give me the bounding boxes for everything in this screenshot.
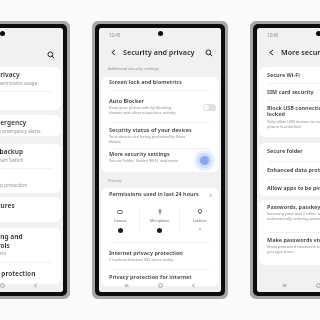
button[interactable]: Recent apps — [278, 279, 291, 292]
button[interactable]: Privacy protection for internet — [101, 270, 219, 286]
button[interactable]: More security settings — [101, 149, 219, 172]
button[interactable]: Microphone — [140, 209, 179, 233]
staticText: Permissions used in last 24 hours — [109, 190, 199, 197]
staticText: Screen lock and biometrics — [109, 78, 182, 85]
button[interactable]: Home — [154, 279, 167, 292]
button[interactable]: SIM card security — [259, 84, 320, 100]
staticText: Enhanced data protection — [267, 166, 320, 173]
button[interactable]: Navigate up — [266, 47, 276, 57]
staticText: Show password characters briefly as you … — [267, 244, 320, 254]
staticText: More security settings — [281, 47, 320, 57]
button[interactable]: Home — [312, 279, 320, 292]
button[interactable]: Security status of your devices — [101, 123, 219, 148]
staticText: Storage, Memory, App protection — [0, 182, 28, 188]
staticText: Microphone — [150, 218, 170, 223]
staticText: Screen time, app timers — [0, 250, 7, 256]
staticText: Privacy protection for internet — [109, 273, 192, 280]
button[interactable]: Internet privacy protection — [101, 243, 219, 269]
staticText: Samsung Cloud · Smart Switch — [0, 157, 24, 163]
staticText: Advanced features — [0, 201, 15, 210]
button[interactable]: Passwords, passkeys and autofill — [259, 200, 320, 232]
staticText: 12:45 — [267, 32, 279, 38]
staticText: Samsung pass and 2 other services for au… — [267, 211, 320, 221]
button[interactable]: Block USB connections when locked — [259, 101, 320, 137]
staticText: Passwords, passkeys and autofill — [267, 203, 320, 210]
staticText: 7 trackers blocked 392 times today — [109, 257, 174, 262]
button[interactable]: Auto Blocker — [101, 91, 219, 122]
button[interactable]: Search — [45, 49, 56, 60]
button[interactable]: Device care — [0, 169, 61, 193]
staticText: Biometrics, Blocker, permission usage — [0, 80, 38, 86]
button[interactable]: Battery · App protection — [0, 263, 61, 284]
staticText: Secure Wi-Fi — [267, 71, 300, 78]
button[interactable]: Accounts and backup — [0, 144, 61, 168]
staticText: SIM card security — [267, 88, 314, 95]
button[interactable]: Allow apps to be pinned — [259, 180, 320, 196]
staticText: Secure Folder, Secure Wi-Fi, and more — [109, 158, 179, 163]
staticText: Secure folder — [267, 147, 303, 154]
button[interactable]: Search — [203, 47, 214, 58]
button[interactable]: Permissions used in last 24 hours — [101, 188, 219, 203]
staticText: Make passwords visible — [267, 236, 320, 243]
staticText: Security and privacy — [123, 47, 203, 57]
staticText: Block USB connections when locked — [267, 104, 320, 118]
staticText: Allow apps to be pinned — [267, 184, 320, 191]
staticText: Keep your phone safe by blocking threats… — [109, 105, 176, 115]
staticText: Auto Blocker — [109, 97, 144, 104]
staticText: Privacy — [108, 178, 122, 183]
button[interactable]: Navigate up — [108, 47, 118, 57]
button[interactable]: Camera — [101, 209, 139, 233]
button[interactable]: Secure Wi-Fi — [259, 67, 320, 83]
staticText: 12:45 — [109, 32, 121, 38]
staticText: Digital wellbeing and parental controls — [0, 232, 23, 249]
button[interactable]: Screen lock and biometrics — [101, 77, 219, 90]
button[interactable]: Safety and emergency — [0, 115, 61, 136]
button[interactable]: Secure folder — [259, 143, 320, 161]
staticText: Only allow USB devices to connect when y… — [267, 119, 320, 129]
staticText: More security settings — [109, 150, 170, 157]
staticText: Battery · App protection — [0, 269, 36, 278]
button[interactable]: Digital wellbeing and parental controls — [0, 228, 61, 262]
staticText: Your devices are being protected by Knox… — [109, 134, 195, 144]
staticText: Security and privacy — [0, 70, 20, 79]
staticText: Security status of your devices — [109, 126, 192, 133]
staticText: Safety and emergency — [0, 118, 27, 127]
staticText: Location — [193, 218, 207, 223]
button[interactable]: Recent apps — [120, 279, 133, 292]
button[interactable]: Advanced features — [0, 197, 61, 222]
button[interactable]: Enhanced data protection — [259, 162, 320, 179]
staticText: Internet privacy protection — [109, 249, 183, 256]
button[interactable]: Back — [187, 279, 200, 292]
staticText: Additional security settings — [108, 66, 159, 71]
staticText: Camera — [114, 218, 127, 223]
button[interactable]: Back — [29, 279, 42, 292]
staticText: Medical info, wireless emergency alerts — [0, 128, 41, 134]
button[interactable]: Security and privacy — [0, 67, 61, 91]
button[interactable]: Home — [0, 279, 9, 292]
staticText: Accounts and backup — [0, 147, 24, 156]
button[interactable]: Location — [180, 209, 219, 230]
button[interactable]: Make passwords visible — [259, 233, 320, 265]
